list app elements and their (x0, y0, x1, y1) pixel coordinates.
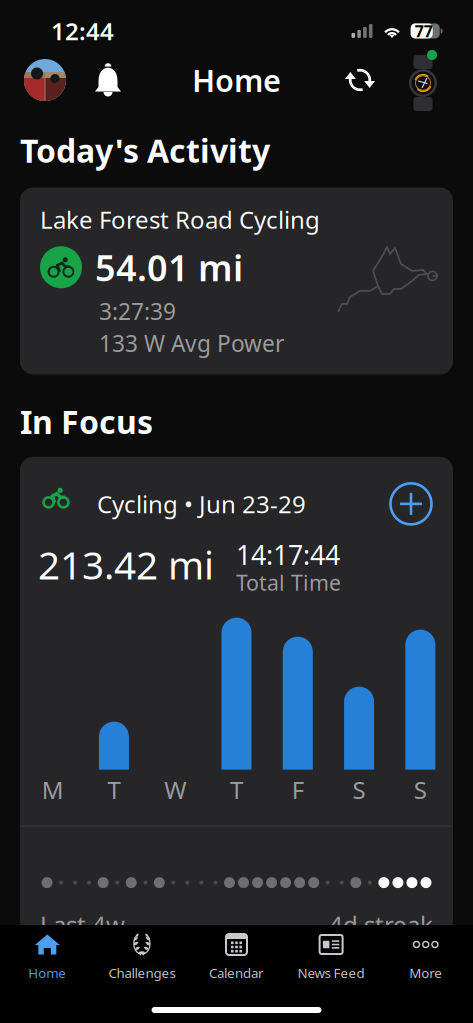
staticText: 54.01 mi (95, 243, 243, 291)
staticText: 12:44 (51, 15, 114, 47)
button[interactable]: Home (0, 933, 95, 985)
button[interactable]: Notifications (94, 63, 122, 96)
staticText: 4d streak (329, 909, 433, 940)
staticText: S (414, 774, 427, 806)
staticText: Today's Activity (20, 129, 270, 171)
button[interactable]: Calendar (189, 933, 284, 985)
staticText: Calendar (209, 964, 264, 982)
staticText: Lake Forest Road Cycling (40, 203, 320, 235)
staticText: T (107, 774, 120, 806)
button[interactable]: Add (389, 482, 433, 526)
staticText: Cycling • Jun 23-29 (97, 488, 306, 520)
staticText: Challenges (108, 964, 175, 982)
button[interactable]: More (378, 933, 473, 985)
staticText: News Feed (298, 964, 365, 982)
staticText: F (292, 774, 304, 806)
button[interactable]: Watch (406, 52, 440, 108)
staticText: 133 W Avg Power (99, 328, 284, 358)
button[interactable]: Profile (24, 59, 66, 101)
staticText: More (409, 964, 442, 982)
staticText: 14:17:44 (236, 537, 340, 572)
staticText: 213.42 mi (38, 539, 214, 590)
staticText: Total Time (236, 568, 341, 597)
staticText: M (42, 774, 64, 806)
staticText: T (230, 774, 243, 806)
staticText: In Focus (20, 400, 153, 443)
staticText: 3:27:39 (99, 296, 176, 326)
button[interactable]: Sync (344, 64, 376, 96)
staticText: Home (28, 964, 66, 982)
button[interactable]: Lake Forest Road Cycling (20, 187, 453, 374)
button[interactable]: News Feed (284, 933, 378, 985)
staticText: Home (192, 60, 281, 100)
staticText: W (164, 774, 186, 806)
button[interactable]: Challenges (95, 933, 189, 985)
staticText: 77 (415, 20, 433, 41)
staticText: S (353, 774, 366, 806)
staticText: Last 4w (40, 909, 125, 940)
